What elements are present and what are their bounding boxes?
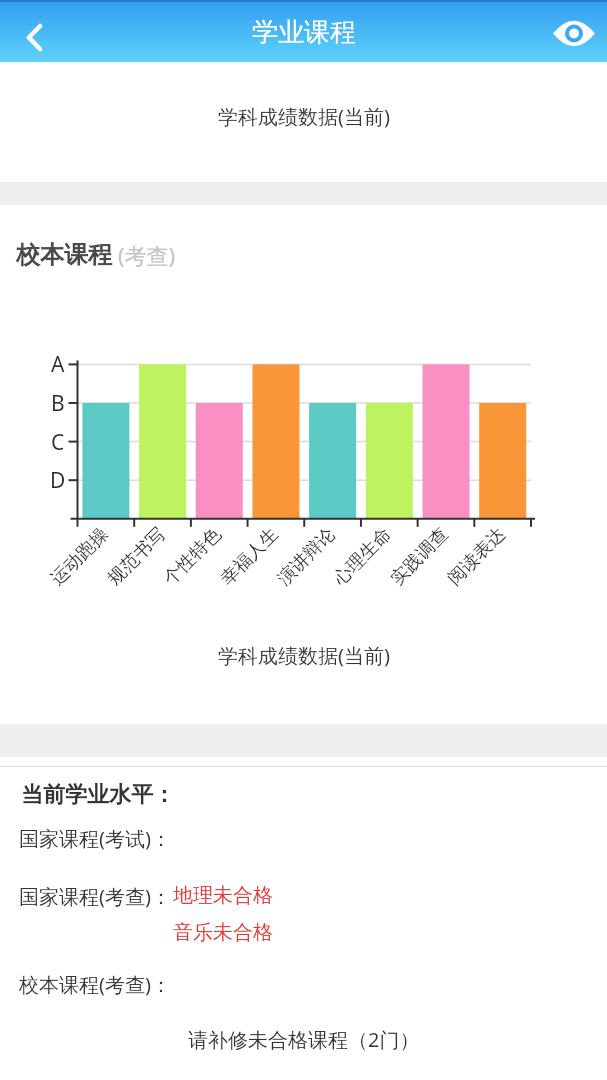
staticText: 学科成绩数据(当前) <box>218 642 390 669</box>
staticText: 国家课程(考查)： <box>19 883 171 910</box>
staticText: 当前学业水平： <box>21 781 175 809</box>
staticText: 学科成绩数据(当前) <box>218 103 390 130</box>
staticText: 国家课程(考试)： <box>19 825 171 852</box>
button[interactable] <box>546 9 602 57</box>
staticText: 阅读表达 <box>443 523 510 590</box>
staticText: 地理未合格 <box>173 883 273 908</box>
staticText: 运动跑操 <box>46 523 113 590</box>
staticText: 校本课程 <box>16 240 112 270</box>
staticText: 心理生命 <box>329 523 396 590</box>
button[interactable] <box>12 15 56 59</box>
staticText: (考查) <box>118 240 176 270</box>
staticText: C <box>51 428 65 457</box>
staticText: 请补修未合格课程（2门） <box>188 1026 420 1053</box>
staticText: 音乐未合格 <box>173 920 273 945</box>
staticText: 个性特色 <box>159 523 226 590</box>
staticText: 学业课程 <box>252 16 356 49</box>
staticText: 实践调查 <box>386 523 453 590</box>
staticText: B <box>51 389 65 418</box>
staticText: 规范书写 <box>103 523 170 590</box>
staticText: 校本课程(考查)： <box>19 971 171 998</box>
staticText: 幸福人生 <box>216 523 283 590</box>
staticText: 演讲辩论 <box>273 523 340 590</box>
staticText: A <box>51 350 65 379</box>
staticText: D <box>50 466 66 495</box>
